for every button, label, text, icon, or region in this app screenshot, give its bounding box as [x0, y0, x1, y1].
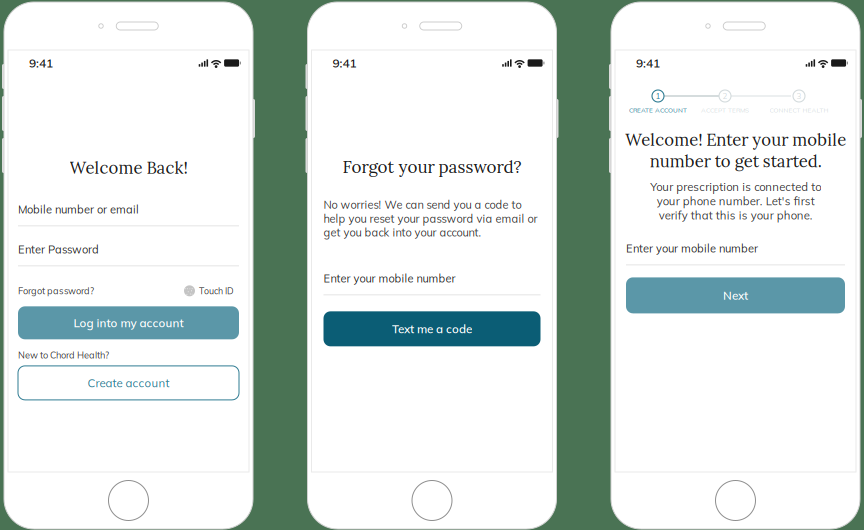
staticText: Mobile number or email [18, 202, 139, 216]
staticText: New to Chord Health? [18, 349, 109, 361]
staticText: Text me a code [392, 322, 472, 336]
staticText: Log into my account [73, 316, 183, 330]
staticText: 9:41 [636, 55, 660, 71]
staticText: Enter your mobile number [323, 271, 455, 285]
button[interactable]: Create account [18, 366, 239, 400]
staticText: Touch ID [199, 285, 234, 296]
staticText: Enter Password [18, 242, 99, 256]
staticText: Enter your mobile number [626, 241, 758, 255]
button[interactable]: Touch ID [184, 285, 234, 296]
staticText: Create account [87, 376, 169, 390]
button[interactable]: Text me a code [323, 311, 540, 346]
staticText: 9:41 [29, 55, 53, 71]
staticText: No worries! We can send you a code to he… [323, 198, 537, 239]
staticText: Forgot password? [18, 285, 94, 297]
staticText: CONNECT HEALTH [769, 106, 828, 114]
staticText: Welcome! Enter your mobile number to get… [625, 129, 846, 172]
staticText: 1 [655, 91, 660, 101]
staticText: 2 [722, 91, 727, 101]
button[interactable]: Log into my account [18, 306, 239, 339]
staticText: CREATE ACCOUNT [629, 106, 687, 114]
staticText: Next [723, 288, 748, 303]
staticText: Forgot your password? [342, 156, 521, 178]
button[interactable]: Forgot password? [18, 285, 94, 297]
staticText: Welcome Back! [69, 157, 187, 178]
staticText: Your prescription is connected to your p… [650, 180, 821, 222]
staticText: 3 [796, 91, 801, 101]
staticText: ACCEPT TERMS [701, 106, 749, 114]
staticText: 9:41 [332, 55, 356, 71]
button[interactable]: Next [626, 277, 845, 313]
